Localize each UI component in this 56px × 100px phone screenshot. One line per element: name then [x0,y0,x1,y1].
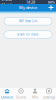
staticText: 84% [47,0,54,5]
staticText: 14:28 [26,0,35,5]
staticText: My device [19,5,37,10]
button[interactable]: Search for device [4,31,52,38]
button[interactable]: Add device [47,4,54,11]
staticText: Me [32,94,38,100]
button[interactable]: WiFi Smart Link [4,17,52,25]
staticText: Device [1,94,13,100]
staticText: China Mobile [1,0,13,7]
button[interactable]: Me [28,88,42,100]
button[interactable]: Device [0,88,14,100]
staticText: Search for device [17,33,39,36]
staticText: Settings [42,94,55,100]
button[interactable]: Scene [14,88,28,100]
staticText: WiFi Smart Link [19,19,37,23]
button[interactable]: Settings [42,88,56,100]
staticText: Scene [16,94,26,100]
